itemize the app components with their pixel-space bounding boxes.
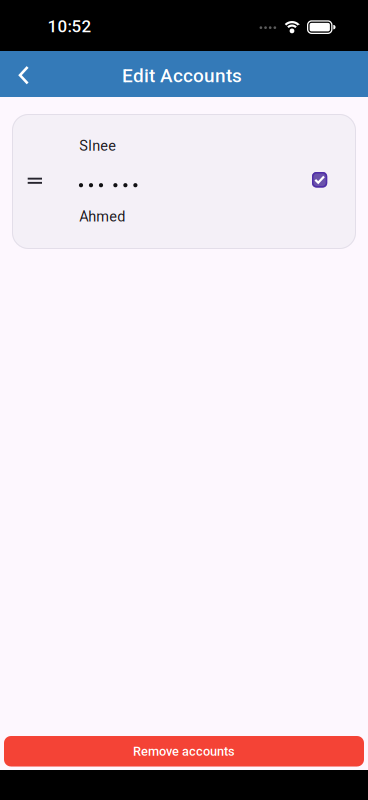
- staticText: Remove accounts: [133, 744, 235, 759]
- staticText: Slnee: [79, 137, 116, 154]
- button[interactable]: Back: [0, 51, 29, 97]
- button[interactable]: Selected: [12, 114, 327, 187]
- staticText: Ahmed: [79, 208, 125, 225]
- staticText: 10:52: [47, 16, 91, 36]
- staticText: Edit Accounts: [122, 65, 242, 87]
- button[interactable]: Remove accounts: [4, 736, 364, 766]
